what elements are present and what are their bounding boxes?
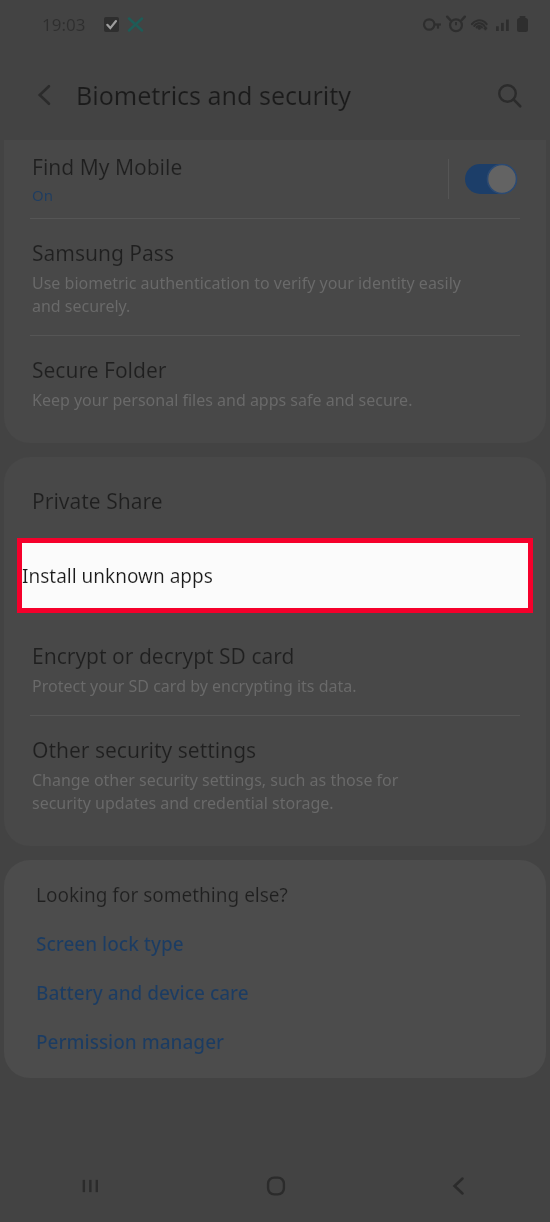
button[interactable]: Find My Mobile [4,140,546,218]
button[interactable]: Permission manager [36,1026,546,1058]
button[interactable]: Screen lock type [36,928,546,960]
staticText: Battery and device care [36,980,249,1006]
staticText: Encrypt or decrypt SD card [32,642,295,671]
button[interactable]: Install unknown apps [22,543,528,608]
button[interactable]: Other security settings [4,716,546,832]
staticText: On [32,185,53,205]
staticText: Use biometric authentication to verify y… [32,272,461,317]
button[interactable]: Samsung Pass [4,219,546,335]
staticText: Private Share [32,487,163,516]
button[interactable]: Find My Mobile toggle [465,164,517,194]
staticText: Protect your SD card by encrypting its d… [32,675,357,697]
staticText: Change other security settings, such as … [32,769,399,814]
staticText: Keep your personal files and apps safe a… [32,389,413,411]
button[interactable]: Private Share [4,467,546,535]
staticText: Looking for something else? [36,882,288,908]
staticText: 19:03 [42,13,86,36]
button[interactable]: Encrypt or decrypt SD card [4,616,546,715]
staticText: Install unknown apps [22,563,213,589]
button[interactable]: Secure Folder [4,336,546,429]
staticText: Other security settings [32,736,257,765]
button[interactable]: Back [22,72,68,118]
staticText: Samsung Pass [32,239,174,268]
button[interactable]: Search [486,72,532,118]
staticText: Screen lock type [36,931,184,957]
staticText: Biometrics and security [76,78,352,112]
staticText: Secure Folder [32,356,167,385]
staticText: Find My Mobile [32,153,183,182]
staticText: Permission manager [36,1029,225,1055]
button[interactable]: Battery and device care [36,977,546,1009]
